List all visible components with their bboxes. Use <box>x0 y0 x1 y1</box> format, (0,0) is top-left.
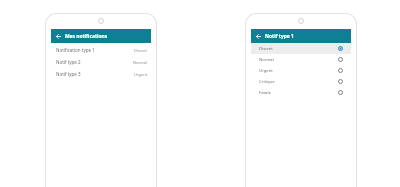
button[interactable]: Critique <box>251 76 351 87</box>
button[interactable]: Notif type 2 <box>51 56 151 68</box>
staticText: Discret <box>134 48 148 53</box>
staticText: Notification type 1 <box>56 47 95 53</box>
staticText: Discret <box>259 46 273 52</box>
staticText: Critique <box>259 79 275 85</box>
staticText: Notif type 3 <box>56 71 81 77</box>
staticText: Mes notifications <box>65 33 108 40</box>
button[interactable]: Back <box>54 32 63 41</box>
staticText: Normal <box>259 57 274 63</box>
staticText: Notif type 2 <box>56 59 81 65</box>
button[interactable]: Discret <box>251 43 351 54</box>
staticText: Urgent <box>259 68 273 74</box>
staticText: Urgent <box>134 72 148 77</box>
button[interactable]: Notif type 3 <box>51 68 151 80</box>
staticText: Notif type 1 <box>265 33 294 40</box>
staticText: Normal <box>133 60 148 65</box>
button[interactable]: Fatale <box>251 87 351 98</box>
button[interactable]: Notification type 1 <box>51 44 151 56</box>
staticText: Fatale <box>259 90 271 96</box>
button[interactable]: Normal <box>251 54 351 65</box>
button[interactable]: Back <box>254 32 263 41</box>
button[interactable]: Urgent <box>251 65 351 76</box>
